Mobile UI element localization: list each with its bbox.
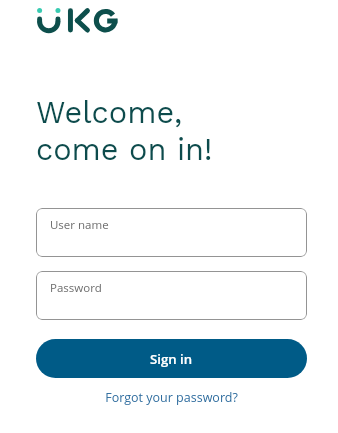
other: UKG [36,8,118,34]
button[interactable]: Forgot your password? [36,389,307,406]
staticText: Sign in [150,350,193,368]
button[interactable]: Password [36,271,307,320]
staticText: User name [50,217,109,233]
staticText: Welcome, come on in! [36,94,213,167]
button[interactable]: User name [36,208,307,257]
staticText: Forgot your password? [105,389,238,406]
staticText: Password [50,280,102,296]
button[interactable]: Sign in [36,339,307,378]
